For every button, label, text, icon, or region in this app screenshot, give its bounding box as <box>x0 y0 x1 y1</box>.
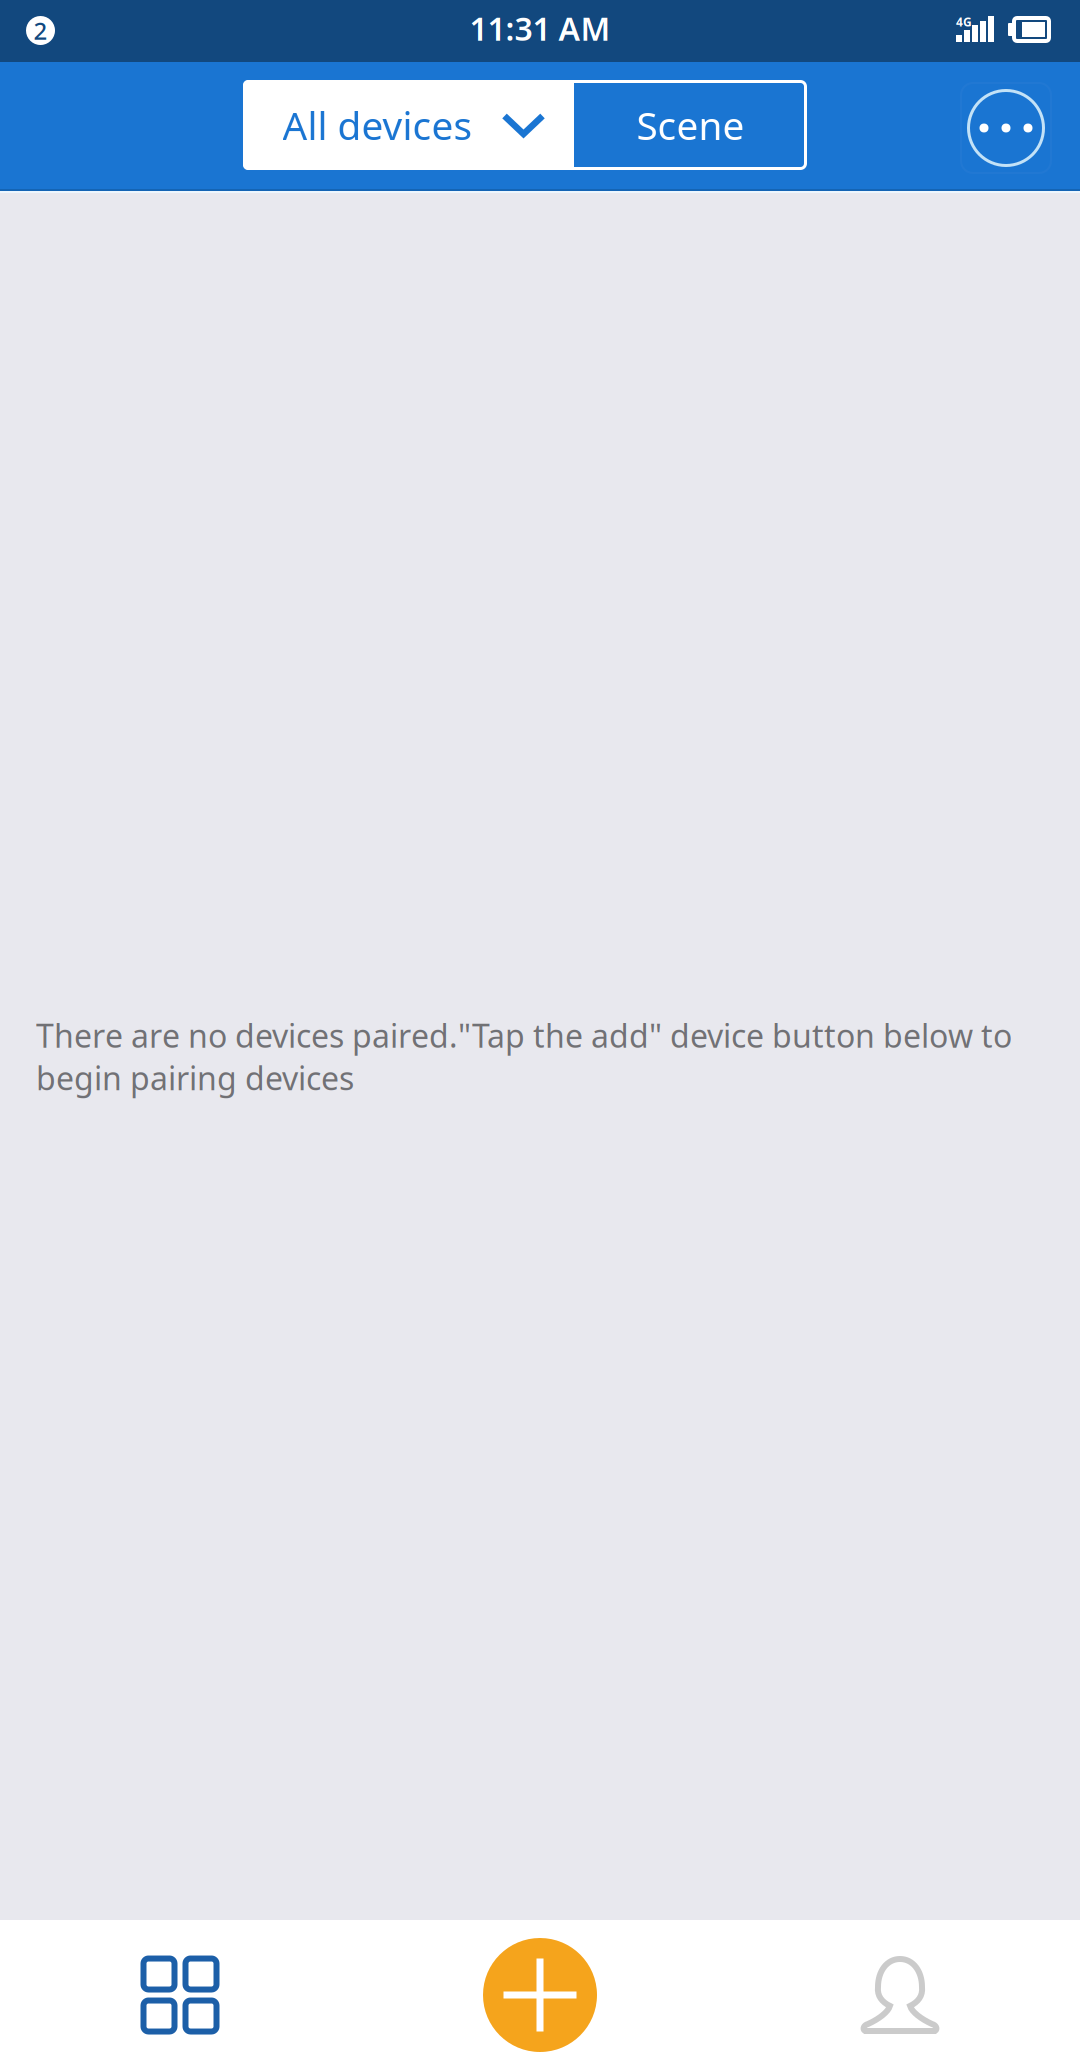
staticText: Scene <box>636 99 744 151</box>
staticText: There are no devices paired."Tap the add… <box>36 1014 1012 1099</box>
button[interactable]: All devices <box>243 80 574 170</box>
button[interactable]: Scene <box>574 80 807 170</box>
button[interactable]: Add device <box>360 1920 720 2060</box>
staticText: 11:31 AM <box>469 7 610 49</box>
staticText: All devices <box>282 99 472 151</box>
staticText: 2 <box>33 15 47 46</box>
button[interactable]: Devices <box>0 1920 360 2060</box>
button[interactable]: More options <box>960 82 1052 174</box>
staticText: 4G <box>956 14 972 30</box>
button[interactable]: Profile <box>720 1920 1080 2060</box>
